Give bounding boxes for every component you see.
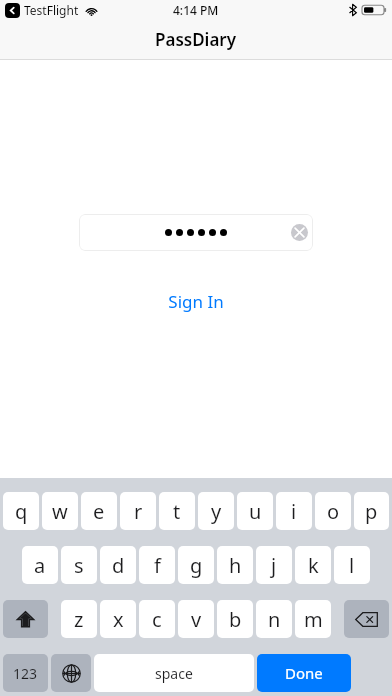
staticText: w [52,498,68,525]
button[interactable]: s [61,546,97,584]
button[interactable]: p [354,492,389,530]
staticText: s [74,552,84,579]
staticText: Sign In [168,290,224,313]
button[interactable]: z [61,600,97,638]
staticText: m [304,606,323,633]
staticText: u [249,498,262,525]
staticText: b [229,606,242,633]
staticText: e [93,498,105,525]
button[interactable]: Back to TestFlight [5,3,20,18]
staticText: o [327,498,340,525]
button[interactable]: b [217,600,253,638]
staticText: l [349,552,355,579]
button[interactable]: Backspace [344,600,389,638]
staticText: j [271,552,277,579]
button[interactable]: e [81,492,117,530]
staticText: Done [285,663,323,683]
button[interactable]: Switch keyboard [51,654,91,692]
button[interactable]: x [100,600,136,638]
staticText: r [134,498,143,525]
staticText: h [229,552,242,579]
button[interactable]: d [100,546,136,584]
button[interactable]: Done [257,654,351,692]
staticText: v [191,606,202,633]
staticText: z [74,606,84,633]
button[interactable]: 123 [3,654,48,692]
staticText: x [113,606,124,633]
staticText: y [211,498,222,525]
staticText: t [173,498,181,525]
staticText: TestFlight [24,2,79,18]
button[interactable]: m [295,600,331,638]
staticText: k [308,552,319,579]
button[interactable]: u [237,492,273,530]
button[interactable]: Shift [3,600,48,638]
staticText: g [190,552,203,579]
staticText: i [291,498,297,525]
staticText: a [34,552,46,579]
button[interactable]: n [256,600,292,638]
button[interactable]: a [22,546,58,584]
staticText: p [365,498,378,525]
button[interactable]: g [178,546,214,584]
button[interactable]: i [276,492,312,530]
button[interactable]: v [178,600,214,638]
staticText: f [154,552,161,579]
button[interactable]: space [94,654,254,692]
button[interactable]: q [3,492,39,530]
staticText: 4:14 PM [173,2,219,18]
button[interactable]: Clear text [291,224,308,241]
button[interactable]: Sign In [146,287,246,315]
staticText: q [15,498,28,525]
button[interactable]: t [159,492,195,530]
button[interactable]: Clear text [79,214,313,251]
button[interactable]: r [120,492,156,530]
staticText: 123 [13,664,38,683]
button[interactable]: y [198,492,234,530]
staticText: d [112,552,125,579]
staticText: n [268,606,281,633]
button[interactable]: l [334,546,370,584]
staticText: c [152,606,162,633]
button[interactable]: k [295,546,331,584]
button[interactable]: w [42,492,78,530]
button[interactable]: j [256,546,292,584]
staticText: PassDiary [155,28,237,51]
button[interactable]: h [217,546,253,584]
button[interactable]: f [139,546,175,584]
staticText: space [155,664,193,683]
button[interactable]: o [315,492,351,530]
button[interactable]: c [139,600,175,638]
